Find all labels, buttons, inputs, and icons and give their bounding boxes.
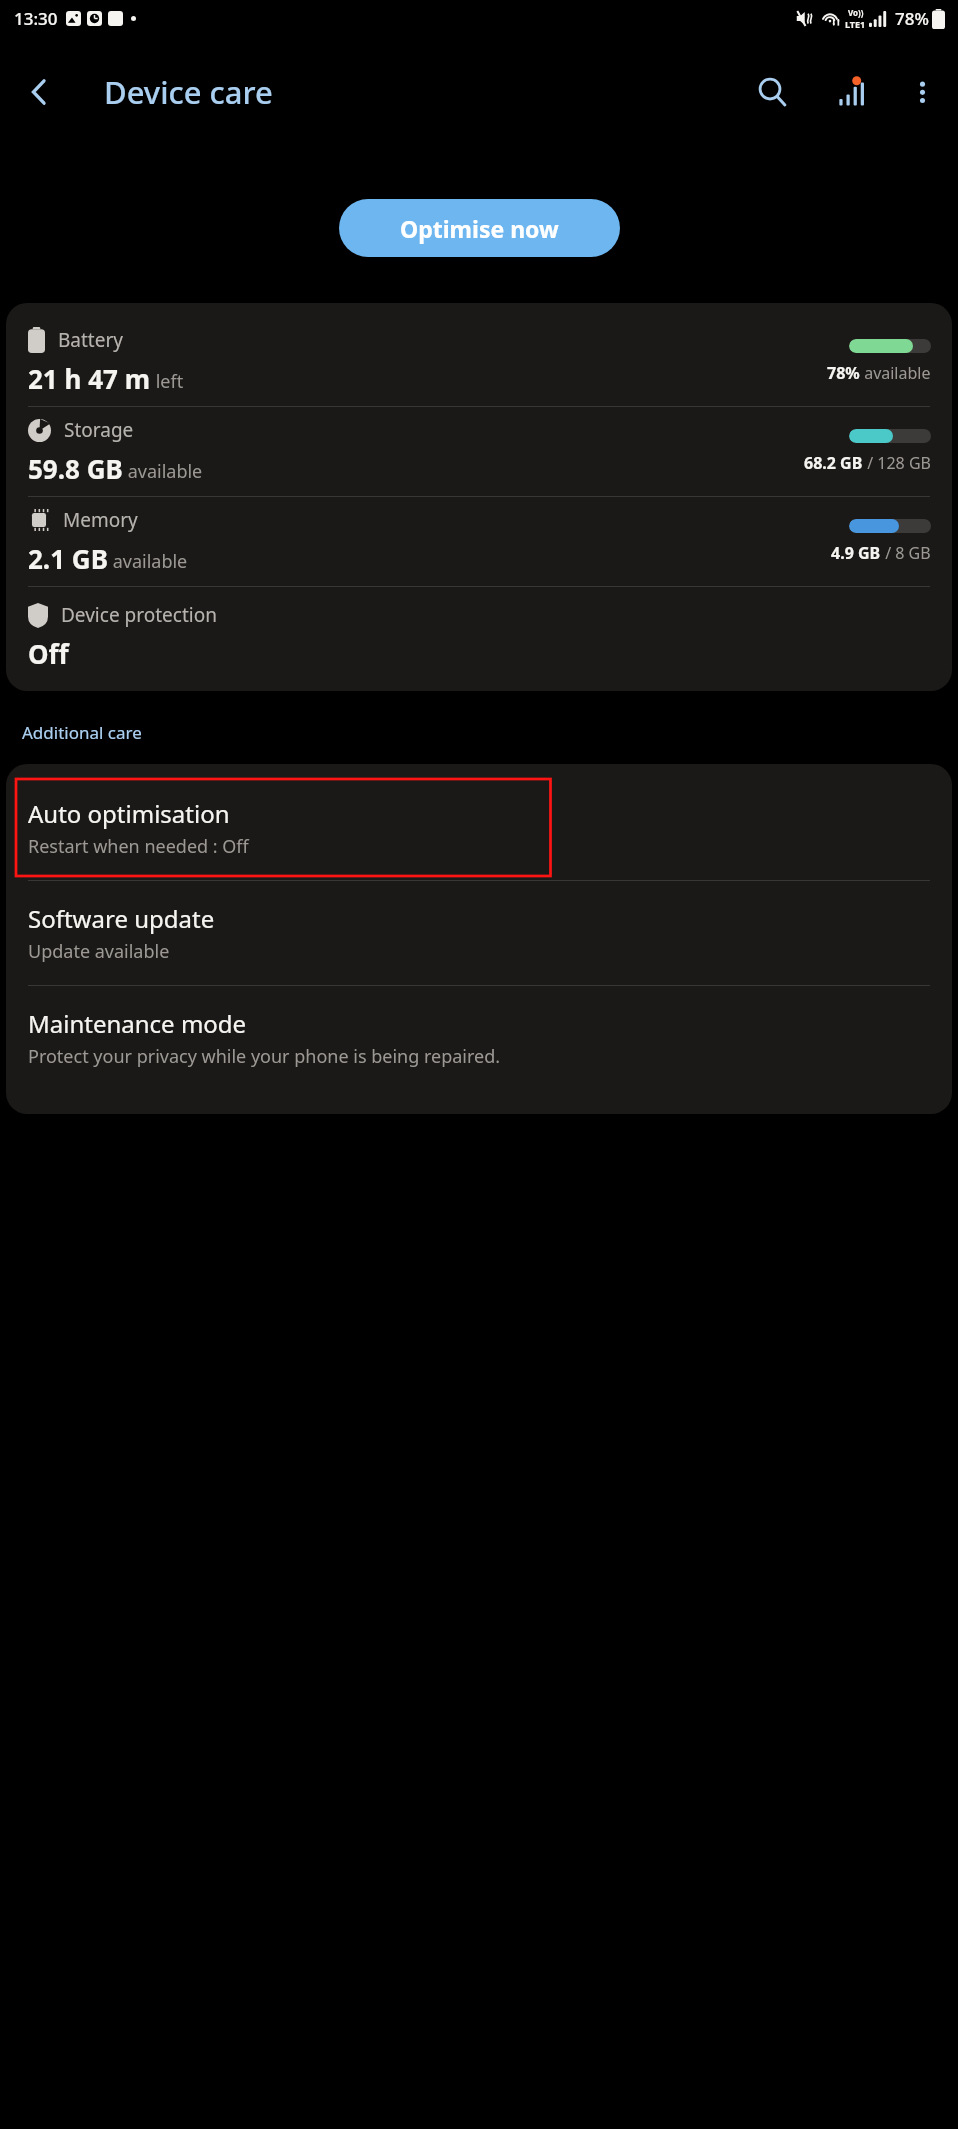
staticText: Optimise now [400,213,559,244]
staticText: Maintenance mode [28,1007,247,1040]
staticText: / 128 GB [863,452,931,474]
button[interactable]: Usage statistics [822,64,878,120]
staticText: 59.8 GB [28,451,123,486]
staticText: Vo)) [848,7,864,18]
staticText: 13:30 [14,7,58,30]
staticText: Protect your privacy while your phone is… [28,1044,501,1069]
staticText: available [108,549,188,574]
staticText: 21 h 47 m [28,361,151,396]
button[interactable]: Device protection [6,587,952,671]
staticText: Off [28,636,69,671]
button[interactable]: Storage [6,407,952,496]
button[interactable]: More options [894,64,950,120]
button[interactable]: Memory [6,497,952,586]
staticText: left [151,369,184,394]
staticText: Auto optimisation [28,797,230,830]
staticText: Storage [64,417,134,443]
button[interactable]: Auto optimisation [6,776,952,880]
staticText: Device care [104,71,273,113]
staticText: 78% [827,362,860,384]
staticText: Software update [28,902,215,935]
staticText: Additional care [22,721,142,744]
staticText: 4.9 GB [831,542,881,564]
staticText: available [123,459,203,484]
staticText: / 8 GB [881,542,931,564]
staticText: Memory [63,507,138,533]
button[interactable]: Search [744,64,800,120]
staticText: 78% [895,7,929,30]
staticText: 2.1 GB [28,541,108,576]
button[interactable]: Optimise now [339,199,620,257]
button[interactable]: Battery [6,317,952,406]
staticText: Device protection [61,602,217,628]
staticText: Update available [28,939,170,964]
button[interactable]: Software update [6,881,952,985]
staticText: available [860,362,931,384]
button[interactable]: Navigate up [11,64,67,120]
staticText: Battery [58,327,123,353]
staticText: Restart when needed : Off [28,834,249,859]
button[interactable]: Maintenance mode [6,986,952,1090]
staticText: 68.2 GB [804,452,863,474]
staticText: LTE1 [845,18,866,30]
